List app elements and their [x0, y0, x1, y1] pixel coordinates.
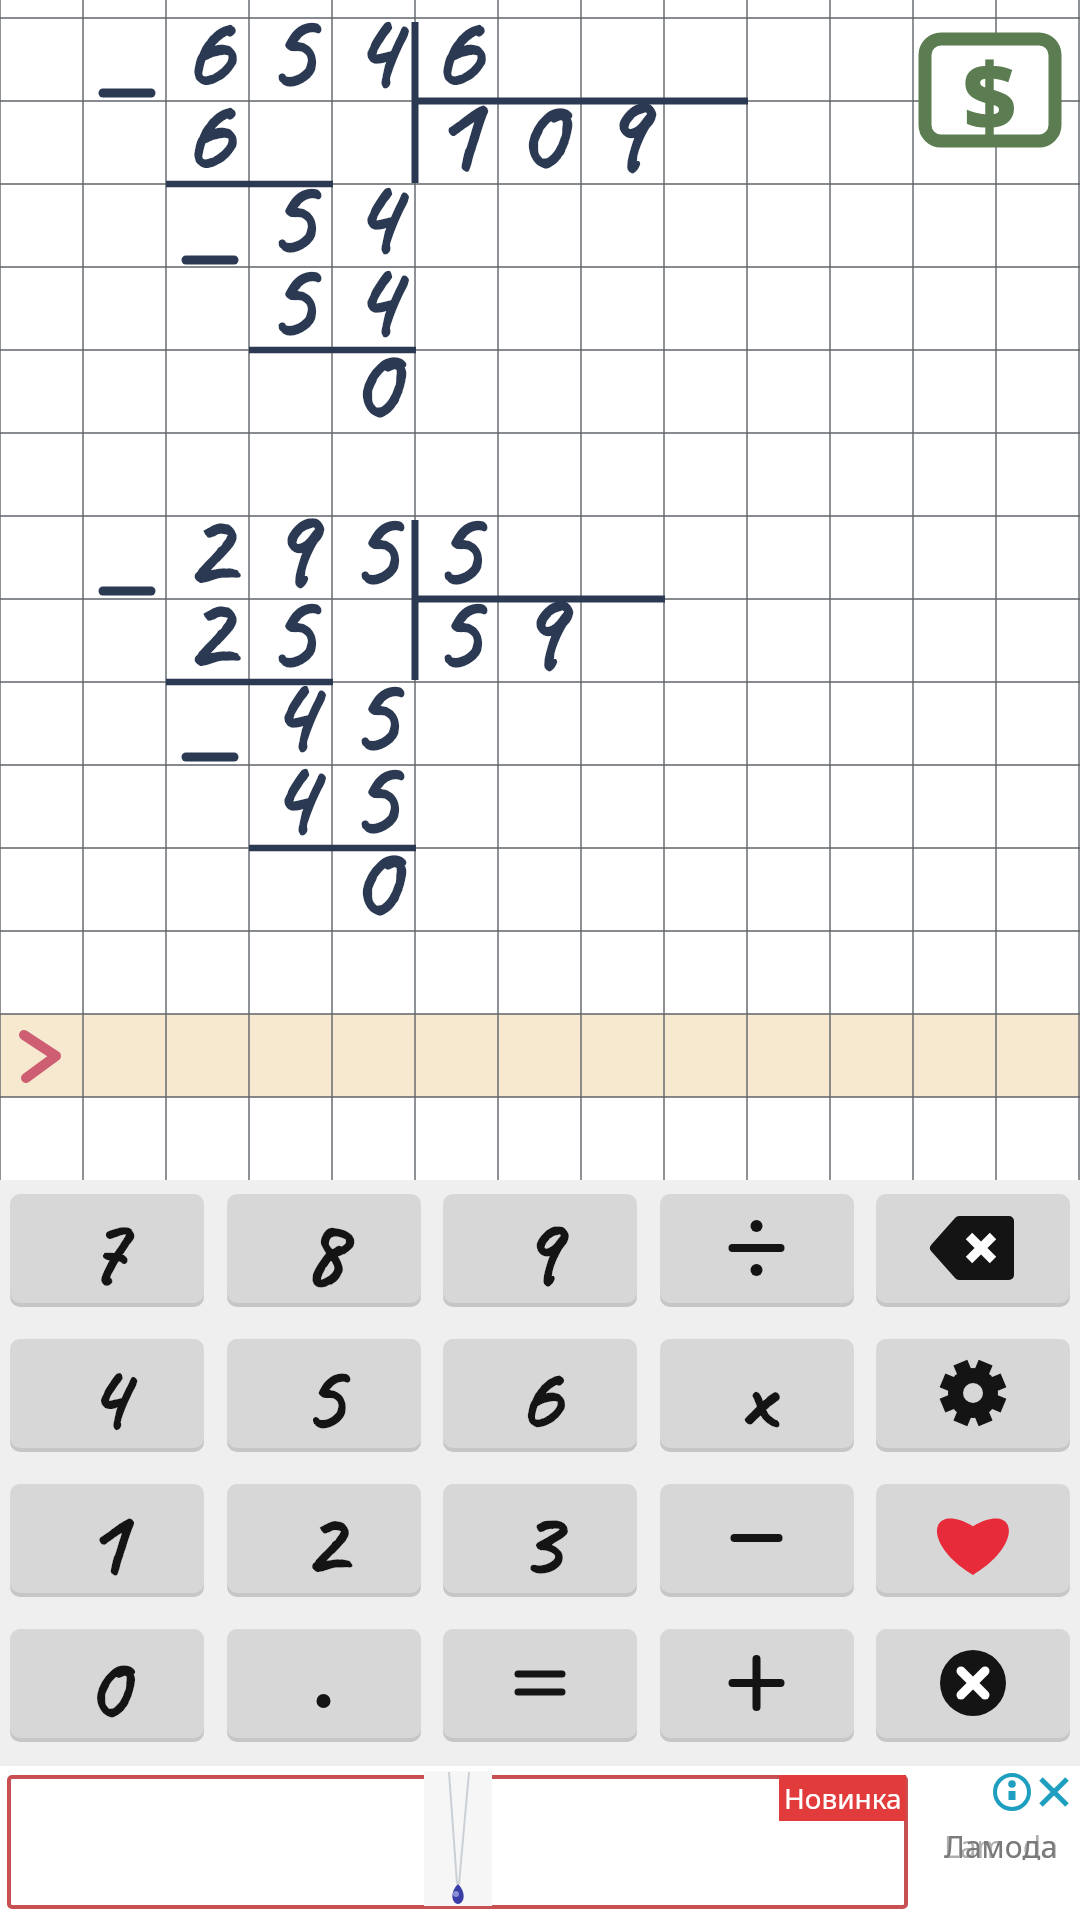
button[interactable] — [227, 1484, 421, 1593]
button[interactable]: Новинка — [779, 1775, 906, 1821]
button[interactable] — [0, 1014, 1080, 1097]
staticText: 4 — [266, 727, 316, 810]
staticText: 9 — [518, 1191, 562, 1311]
staticText: 5 — [349, 478, 399, 561]
button[interactable] — [660, 1484, 854, 1593]
staticText: $ — [963, 32, 1017, 148]
staticText: 5 — [266, 0, 316, 63]
button[interactable] — [10, 1629, 204, 1738]
staticText: 8 — [302, 1191, 346, 1311]
button[interactable] — [876, 1484, 1070, 1593]
button[interactable] — [10, 1194, 204, 1303]
staticText: Ламода — [944, 1826, 1058, 1860]
button[interactable] — [227, 1194, 421, 1303]
staticText: 5 — [432, 478, 482, 561]
staticText: 0 — [515, 63, 565, 146]
button[interactable] — [876, 1629, 1070, 1738]
button[interactable] — [227, 1339, 421, 1448]
staticText: 6 — [432, 0, 482, 63]
button[interactable] — [227, 1629, 421, 1738]
staticText: 5 — [266, 229, 316, 312]
button[interactable]: $ — [918, 32, 1062, 148]
button[interactable] — [660, 1629, 854, 1738]
staticText: 2 — [183, 478, 233, 561]
staticText: 9 — [266, 478, 316, 561]
staticText: 4 — [349, 146, 399, 229]
staticText: Lamoda — [944, 1826, 1059, 1860]
button[interactable] — [660, 1339, 854, 1448]
staticText: 4 — [85, 1336, 129, 1456]
staticText: 5 — [432, 561, 482, 644]
staticText: 1 — [432, 63, 482, 146]
staticText: Новинка — [784, 1779, 902, 1817]
button[interactable] — [876, 1339, 1070, 1448]
staticText: 2 — [302, 1481, 346, 1601]
staticText: 6 — [183, 63, 233, 146]
staticText: 0 — [349, 810, 399, 893]
staticText: 7 — [85, 1191, 129, 1311]
button[interactable] — [10, 1484, 204, 1593]
staticText: 4 — [349, 0, 399, 63]
staticText: 9 — [515, 561, 565, 644]
staticText: 0 — [349, 312, 399, 395]
button[interactable] — [0, 1766, 1080, 1920]
button[interactable] — [10, 1339, 204, 1448]
staticText: 5 — [266, 146, 316, 229]
staticText: 3 — [518, 1481, 562, 1601]
staticText: 4 — [349, 229, 399, 312]
button[interactable] — [876, 1194, 1070, 1303]
staticText: 0 — [85, 1626, 129, 1746]
staticText: 6 — [518, 1336, 562, 1456]
staticText: 6 — [183, 0, 233, 63]
staticText: 5 — [349, 644, 399, 727]
staticText: 9 — [598, 63, 648, 146]
staticText: 1 — [85, 1481, 129, 1601]
staticText: 5 — [349, 727, 399, 810]
staticText: 5 — [302, 1336, 346, 1456]
button[interactable] — [443, 1484, 637, 1593]
staticText: x — [741, 1338, 773, 1454]
button[interactable] — [443, 1629, 637, 1738]
button[interactable] — [443, 1194, 637, 1303]
staticText: 5 — [266, 561, 316, 644]
button[interactable] — [660, 1194, 854, 1303]
staticText: 4 — [266, 644, 316, 727]
staticText: 2 — [183, 561, 233, 644]
button[interactable] — [443, 1339, 637, 1448]
